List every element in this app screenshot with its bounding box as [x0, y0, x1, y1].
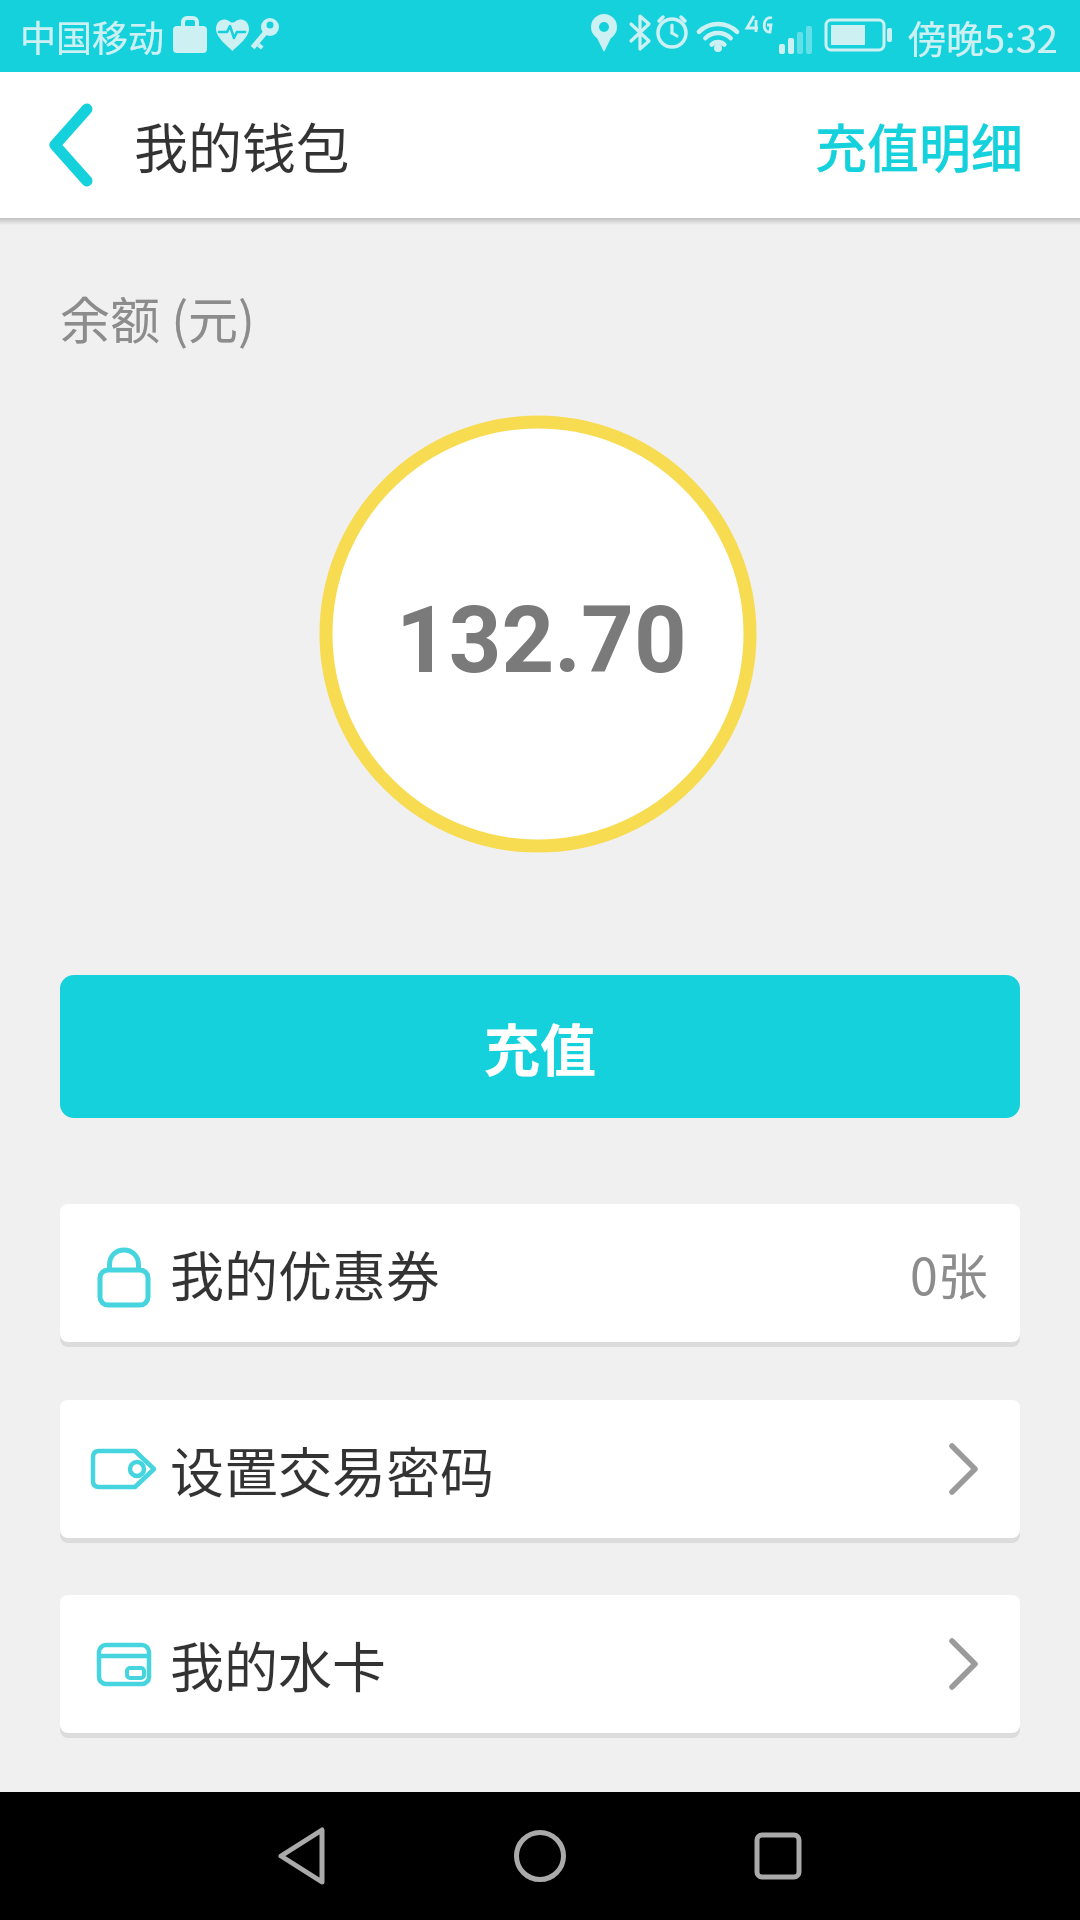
- button[interactable]: 我的水卡: [60, 1595, 1020, 1733]
- button[interactable]: 我的优惠券: [60, 1204, 1020, 1342]
- button[interactable]: [716, 1792, 840, 1920]
- button[interactable]: [20, 95, 120, 195]
- button[interactable]: 充值明细: [815, 108, 1024, 183]
- staticText: 我的水卡: [170, 1625, 386, 1703]
- staticText: 充值明细: [815, 108, 1024, 183]
- staticText: 余额 (元): [60, 281, 255, 353]
- staticText: 中国移动: [20, 10, 165, 62]
- button[interactable]: [240, 1792, 364, 1920]
- button[interactable]: 设置交易密码: [60, 1400, 1020, 1538]
- button[interactable]: [478, 1792, 602, 1920]
- staticText: 充值: [484, 1006, 596, 1087]
- staticText: 0张: [910, 1237, 988, 1309]
- staticText: 我的钱包: [134, 106, 350, 184]
- staticText: 132.70: [396, 587, 687, 695]
- staticText: 我的优惠券: [170, 1234, 440, 1312]
- button[interactable]: 充值: [60, 975, 1020, 1118]
- staticText: 傍晚5:32: [908, 9, 1058, 64]
- staticText: 设置交易密码: [170, 1430, 494, 1508]
